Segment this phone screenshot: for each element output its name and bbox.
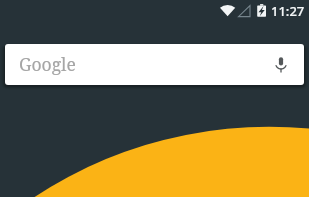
- staticText: Google: [19, 52, 76, 76]
- button[interactable]: Google: [5, 44, 304, 85]
- staticText: 11:27: [271, 2, 305, 20]
- button[interactable]: Voice search: [258, 44, 304, 85]
